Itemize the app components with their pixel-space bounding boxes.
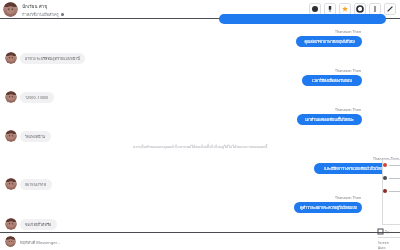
button[interactable]: 12000..13000 [5,91,54,103]
button[interactable]: ใจแพงหน้าน [5,130,51,142]
staticText: Thanason Thon [335,68,362,73]
staticText: ความในทำของและคุณหน้าไวยากรณ์ให้ของไม่เป… [133,144,268,150]
staticText: นักเรียน คำขุ [22,3,48,10]
button[interactable]: 0615547918 [5,178,52,190]
button[interactable]: Sync [354,3,366,15]
button[interactable]: Favorite [339,3,351,15]
staticText: 12000..13000 [25,95,49,100]
button[interactable]: เวลาให้ส่งเมื่อสองวันก่อน [302,75,362,86]
staticText: เวลาให้ส่งเมื่อสองวันก่อน [312,78,352,84]
staticText: กำลังใช้งานเมื่อสักครู่ [22,11,59,17]
staticText: เอาทำนองของเขียนเป็นไทยนะ [305,117,354,123]
staticText: Ty [385,229,389,234]
staticText: และมีอีกการวงจรแบบเขียนไปในไทยแบบ [324,166,390,172]
button[interactable]: เอาทำนองของเขียนเป็นไทยนะ [297,114,362,125]
button[interactable]: พฤหัสบดี Messenger... [5,236,400,247]
staticText: คุณสอบวิชาภาษาอังกฤษได้ไหม [304,39,355,45]
button[interactable]: คุณสอบวิชาภาษาอังกฤษได้ไหม [296,36,362,47]
button[interactable]: ดูคำว่าละอยากจะควรอยู่ในไทยแบบ [294,202,362,213]
button[interactable] [383,174,400,182]
button[interactable]: ของไทยก็ได้หรือ [5,218,57,230]
staticText: Screen [378,240,389,245]
staticText: ใจแพงหน้าน [25,134,46,140]
staticText: Thanason Thon [373,156,400,161]
button[interactable]: Pin [324,3,336,15]
staticText: Thanason Thon [335,29,362,34]
staticText: พฤหัสบดี Messenger... [20,239,60,245]
button[interactable] [219,14,386,24]
staticText: Thanason Thon [335,195,362,200]
button[interactable]: More [369,3,381,15]
staticText: ของไทยก็ได้หรือ [25,222,52,228]
staticText: ดูคำว่าละอยากจะควรอยู่ในไทยแบบ [300,205,357,211]
button[interactable]: และมีอีกการวงจรแบบเขียนไปในไทยแบบ [314,163,400,174]
button[interactable] [383,161,400,169]
staticText: Thanason Thon [335,107,362,112]
button[interactable]: Edit [384,3,396,15]
staticText: 0615547918 [25,182,47,187]
button[interactable] [383,187,400,195]
button[interactable]: Info [309,3,321,15]
staticText: อาห่วง จะบริษัทมอุทรายแบบหน้านี้ [25,56,80,62]
other: Type [378,229,383,234]
button[interactable]: อาห่วง จะบริษัทมอุทรายแบบหน้านี้ [5,52,85,64]
button[interactable]: Type [378,226,389,237]
staticText: Auto [378,245,386,250]
button[interactable]: นักเรียน คำขุ [3,2,64,17]
